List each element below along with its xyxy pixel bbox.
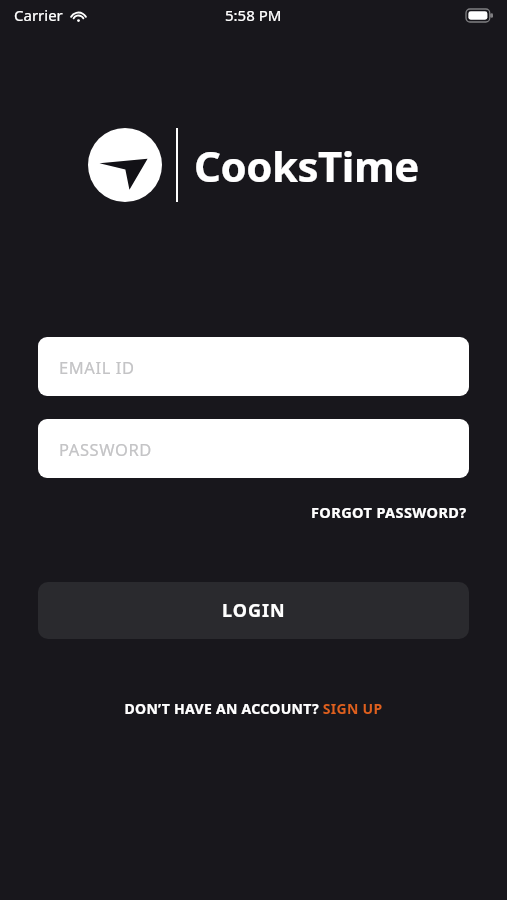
button[interactable]: EMAIL ID (38, 337, 469, 396)
staticText: FORGOT PASSWORD? (311, 502, 467, 522)
staticText: LOGIN (222, 598, 286, 623)
button[interactable]: LOGIN (38, 582, 469, 639)
staticText: 5:58 PM (225, 5, 282, 25)
staticText: CooksTime (194, 137, 419, 194)
staticText: Carrier (14, 5, 63, 25)
button[interactable]: DON’T HAVE AN ACCOUNT? SIGN UP (120, 695, 387, 722)
other: CooksTime logo (88, 128, 162, 202)
staticText: DON’T HAVE AN ACCOUNT? SIGN UP (124, 699, 383, 718)
staticText: EMAIL ID (59, 356, 135, 378)
staticText: PASSWORD (59, 438, 152, 460)
button[interactable]: PASSWORD (38, 419, 469, 478)
button[interactable]: FORGOT PASSWORD? (309, 499, 469, 525)
